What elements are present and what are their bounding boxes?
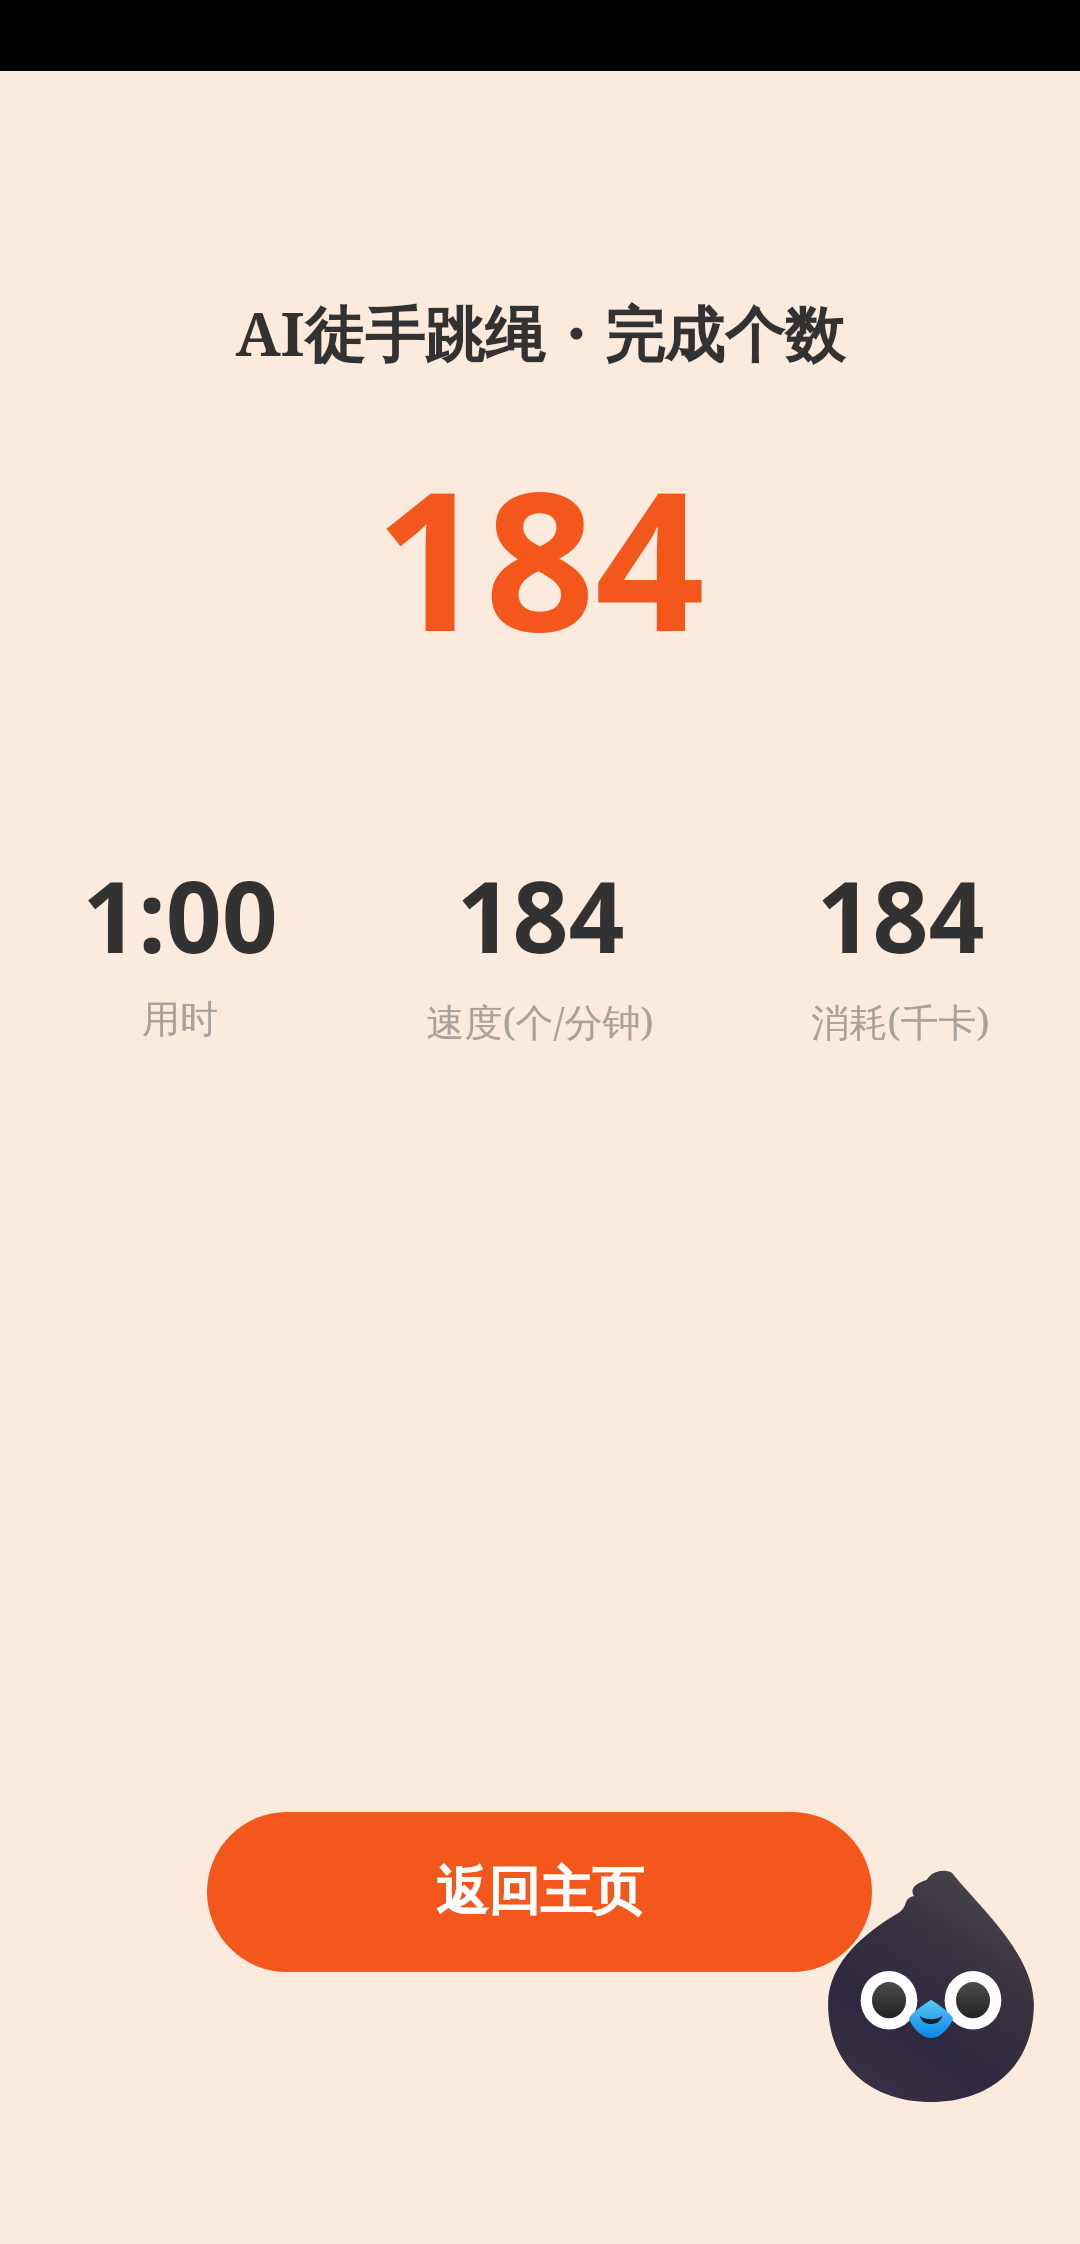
staticText: 184 — [816, 848, 985, 981]
staticText: 返回主页 — [436, 1859, 644, 1925]
staticText: 速度(个/分钟) — [426, 995, 654, 1047]
staticText: 消耗(千卡) — [811, 995, 990, 1047]
button[interactable]: 1:00 — [0, 848, 360, 1043]
button[interactable]: 184 — [360, 848, 720, 1047]
staticText: 184 — [456, 848, 625, 981]
staticText: AI徒手跳绳・完成个数 — [235, 292, 845, 374]
staticText: 1:00 — [82, 848, 278, 981]
button[interactable]: AI assistant mascot — [826, 1868, 1036, 2102]
button[interactable]: 184 — [720, 848, 1080, 1047]
button[interactable]: 返回主页 — [207, 1812, 872, 1972]
staticText: 用时 — [142, 995, 218, 1043]
staticText: 184 — [375, 426, 705, 688]
